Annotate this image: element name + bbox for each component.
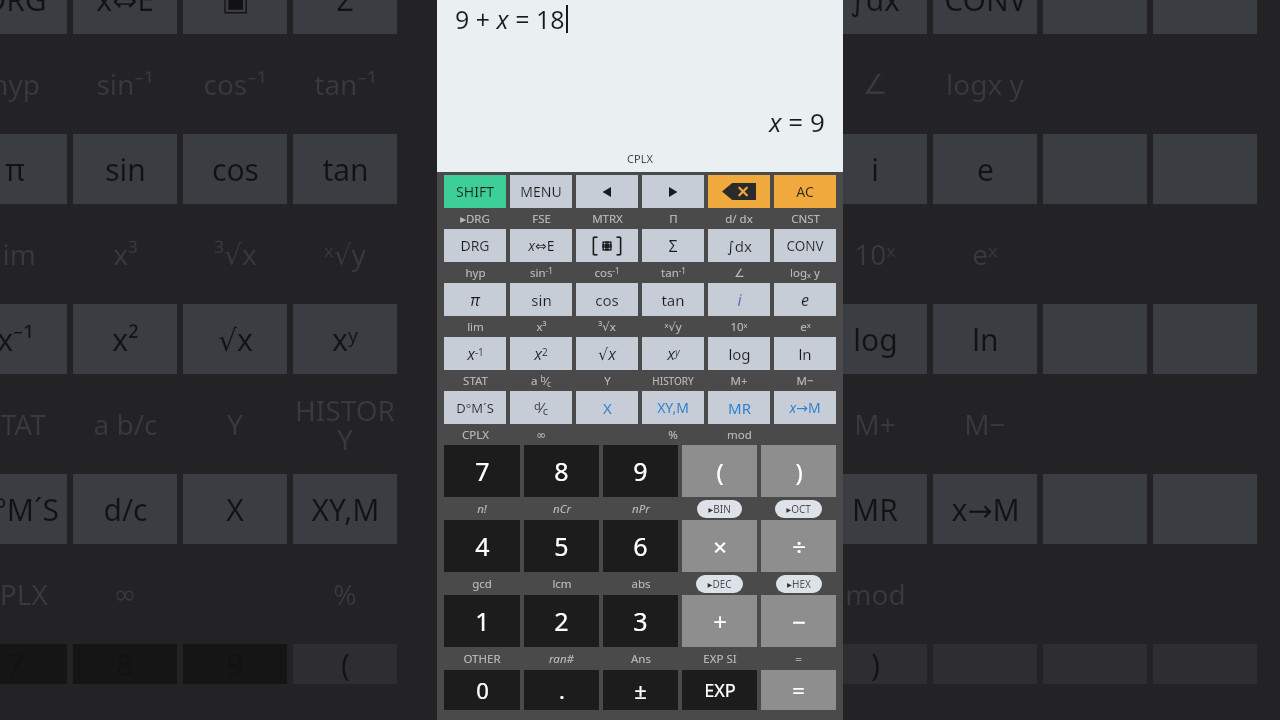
button[interactable]: = bbox=[761, 670, 836, 710]
staticText: tan-1 bbox=[661, 265, 686, 281]
staticText: nCr bbox=[553, 501, 571, 517]
button[interactable]: + bbox=[682, 595, 757, 647]
staticText: x→M bbox=[789, 398, 821, 417]
button[interactable]: × bbox=[682, 520, 757, 572]
staticText: 9 + x = 18 bbox=[455, 2, 565, 36]
button[interactable]: X bbox=[576, 391, 638, 424]
staticText: π bbox=[5, 149, 25, 190]
button[interactable]: D°M´S bbox=[444, 391, 506, 424]
button[interactable]: tan bbox=[642, 283, 704, 316]
staticText: cos-1 bbox=[594, 265, 620, 281]
staticText: Σ bbox=[668, 235, 678, 257]
button[interactable]: 9 bbox=[603, 445, 678, 497]
button[interactable]: x⇔E bbox=[510, 229, 572, 262]
staticText: lim bbox=[467, 319, 484, 335]
staticText: sin bbox=[531, 290, 552, 310]
staticText: CONV bbox=[786, 237, 824, 255]
staticText: M+ bbox=[854, 405, 896, 443]
staticText: cos bbox=[595, 290, 619, 310]
other: Left bbox=[576, 175, 638, 208]
button[interactable]: XY,M bbox=[642, 391, 704, 424]
staticText: XY,M bbox=[311, 489, 380, 530]
button[interactable]: 0 bbox=[444, 670, 520, 710]
button[interactable]: d⁄c bbox=[510, 391, 572, 424]
button[interactable]: ▸OCT bbox=[775, 500, 822, 518]
button[interactable]: 7 bbox=[444, 445, 520, 497]
button[interactable]: . bbox=[524, 670, 599, 710]
button[interactable]: ÷ bbox=[761, 520, 836, 572]
button[interactable]: sin bbox=[510, 283, 572, 316]
staticText: sin⁻¹ bbox=[96, 65, 154, 103]
staticText: cos⁻¹ bbox=[203, 65, 267, 103]
button[interactable]: Backspace bbox=[708, 175, 770, 208]
other: Right bbox=[642, 175, 704, 208]
button[interactable]: DRG bbox=[444, 229, 506, 262]
staticText: 1 bbox=[475, 604, 490, 638]
staticText: ln bbox=[798, 344, 812, 364]
button[interactable]: 2 bbox=[524, 595, 599, 647]
button[interactable]: 3 bbox=[603, 595, 678, 647]
button[interactable]: EXP bbox=[682, 670, 757, 710]
button[interactable]: i bbox=[708, 283, 770, 316]
button[interactable]: ▸BIN bbox=[697, 500, 742, 518]
staticText: ∞ bbox=[536, 428, 546, 441]
button[interactable]: SHIFT bbox=[444, 175, 506, 208]
staticText: x⇔E bbox=[96, 0, 154, 20]
staticText: % bbox=[333, 575, 357, 613]
staticText: OTHER bbox=[463, 651, 501, 667]
button[interactable]: 1 bbox=[444, 595, 520, 647]
staticText: ▣ bbox=[221, 0, 250, 17]
staticText: √x bbox=[598, 343, 616, 365]
button[interactable]: 8 bbox=[524, 445, 599, 497]
button[interactable]: x-1 bbox=[444, 337, 506, 370]
button[interactable]: log bbox=[708, 337, 770, 370]
staticText: cos bbox=[212, 149, 259, 190]
button[interactable]: Right bbox=[642, 175, 704, 208]
staticText: 7 bbox=[475, 454, 490, 488]
staticText: EXP SI bbox=[703, 651, 737, 667]
button[interactable]: √x bbox=[576, 337, 638, 370]
staticText: tan bbox=[322, 149, 369, 190]
staticText: ³√x bbox=[214, 235, 257, 273]
button[interactable]: xy bbox=[642, 337, 704, 370]
staticText: nPr bbox=[632, 501, 650, 517]
button[interactable]: Matrix bbox=[576, 229, 638, 262]
staticText: hyp bbox=[0, 65, 40, 103]
staticText: logx y bbox=[946, 65, 1024, 103]
staticText: HISTORY bbox=[652, 374, 694, 388]
button[interactable]: x→M bbox=[774, 391, 836, 424]
button[interactable]: MENU bbox=[510, 175, 572, 208]
staticText: e bbox=[977, 149, 994, 190]
button[interactable]: ▸HEX bbox=[776, 575, 822, 593]
button[interactable]: AC bbox=[774, 175, 836, 208]
button[interactable]: Left bbox=[576, 175, 638, 208]
staticText: x→M bbox=[951, 489, 1020, 530]
button[interactable]: cos bbox=[576, 283, 638, 316]
staticText: DRG bbox=[0, 0, 47, 20]
button[interactable]: CONV bbox=[774, 229, 836, 262]
staticText: ˣ√y bbox=[664, 319, 682, 335]
button[interactable]: π bbox=[444, 283, 506, 316]
staticText: ∞ bbox=[113, 578, 137, 611]
button[interactable]: e bbox=[774, 283, 836, 316]
button[interactable]: ln bbox=[774, 337, 836, 370]
staticText: Σ bbox=[336, 0, 354, 20]
button[interactable]: ± bbox=[603, 670, 678, 710]
staticText: x⁻¹ bbox=[0, 319, 34, 360]
staticText: ▸DRG bbox=[460, 211, 490, 227]
button[interactable]: x2 bbox=[510, 337, 572, 370]
button[interactable]: ∫dx bbox=[708, 229, 770, 262]
button[interactable]: 5 bbox=[524, 520, 599, 572]
button[interactable]: 4 bbox=[444, 520, 520, 572]
button[interactable]: MR bbox=[708, 391, 770, 424]
button[interactable]: ▸DEC bbox=[696, 575, 743, 593]
button[interactable]: ) bbox=[761, 445, 836, 497]
button[interactable]: 6 bbox=[603, 520, 678, 572]
button[interactable]: ( bbox=[682, 445, 757, 497]
staticText: 10ˣ bbox=[730, 319, 748, 335]
button[interactable]: − bbox=[761, 595, 836, 647]
staticText: FSE bbox=[532, 211, 551, 227]
staticText: MR bbox=[852, 489, 898, 530]
button[interactable]: Σ bbox=[642, 229, 704, 262]
staticText: HISTORY bbox=[290, 391, 400, 458]
